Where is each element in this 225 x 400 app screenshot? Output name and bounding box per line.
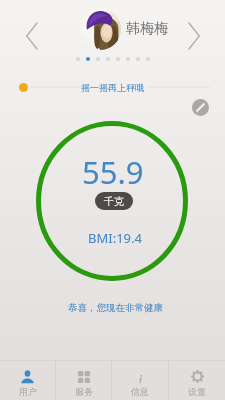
staticText: 恭喜，您现在非常健康 — [68, 302, 163, 314]
button[interactable]: 用户 — [0, 361, 55, 400]
button[interactable]: Page 1 — [76, 57, 80, 61]
button[interactable]: Page 3 — [96, 57, 100, 61]
button[interactable]: Page 5 — [116, 57, 120, 61]
button[interactable]: 设置 — [169, 361, 225, 400]
button[interactable]: Edit — [192, 99, 209, 116]
staticText: 信息 — [131, 386, 149, 397]
button[interactable]: i — [112, 361, 168, 400]
staticText: 服务 — [75, 386, 93, 397]
staticText: 韩梅梅 — [126, 20, 168, 38]
button[interactable]: 恭喜，您现在非常健康 — [3, 301, 225, 315]
button[interactable]: 服务 — [56, 361, 111, 400]
staticText: 55.9 — [82, 151, 144, 185]
button[interactable]: Page 4 — [106, 57, 110, 61]
button[interactable]: Page 6 — [126, 57, 130, 61]
staticText: 千克 — [104, 195, 124, 208]
other: User avatar — [79, 8, 121, 50]
button[interactable]: 千克 — [95, 192, 133, 210]
button[interactable]: Previous user — [13, 18, 49, 54]
button[interactable]: 摇一摇再上秤哦 — [0, 79, 225, 95]
button[interactable]: Next user — [176, 18, 212, 54]
staticText: 用户 — [19, 386, 37, 397]
staticText: i — [138, 370, 143, 383]
staticText: BMI:19.4 — [88, 229, 142, 247]
button[interactable]: Page 7 — [136, 57, 140, 61]
button[interactable]: Page 8 — [146, 57, 150, 61]
staticText: 设置 — [188, 386, 206, 397]
button[interactable]: Page 2 — [86, 57, 90, 61]
button[interactable]: User avatar — [79, 8, 168, 50]
staticText: 摇一摇再上秤哦 — [81, 82, 144, 93]
